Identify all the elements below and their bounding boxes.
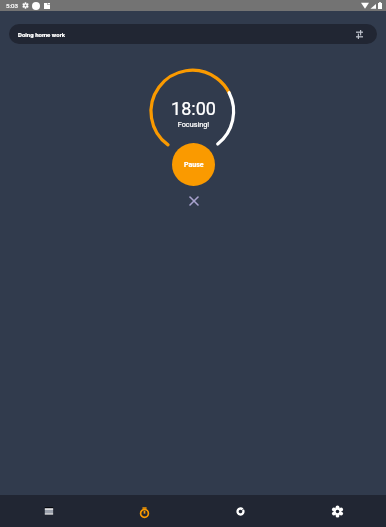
staticText: 5:03 — [6, 2, 18, 9]
staticText: 18:00 — [143, 98, 244, 119]
button[interactable]: Doing home work — [9, 24, 377, 44]
staticText: Focusing! — [143, 120, 244, 129]
button[interactable]: Pause — [172, 143, 215, 186]
staticText: Pause — [184, 161, 204, 169]
button[interactable]: Stop — [182, 189, 206, 213]
staticText: Doing home work — [18, 31, 66, 38]
button[interactable]: Settings — [289, 495, 386, 527]
button[interactable]: Statistics — [192, 495, 289, 527]
button[interactable]: Timer — [96, 495, 192, 527]
other: Filter — [356, 30, 363, 39]
button[interactable]: Tasks — [0, 495, 96, 527]
